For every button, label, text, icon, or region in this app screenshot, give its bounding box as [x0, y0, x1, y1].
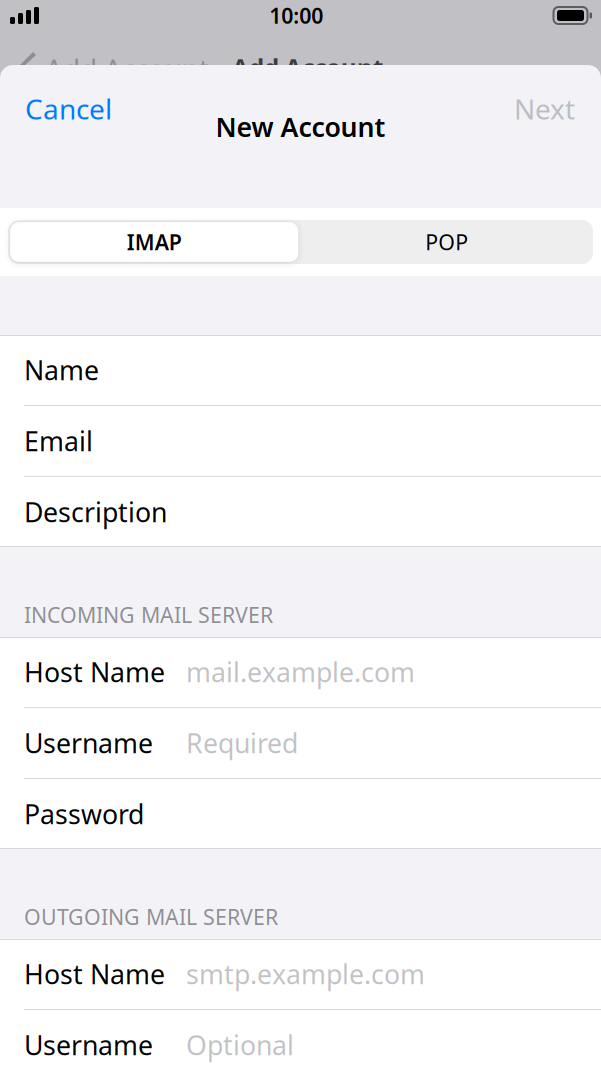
- button[interactable]: Email: [0, 406, 601, 476]
- button[interactable]: Password: [0, 779, 601, 849]
- button[interactable]: Next: [514, 83, 575, 134]
- staticText: Host Name: [24, 956, 165, 992]
- staticText: Username: [24, 725, 153, 761]
- staticText: Username: [24, 1027, 153, 1063]
- staticText: Password: [24, 796, 144, 832]
- staticText: OUTGOING MAIL SERVER: [24, 903, 278, 931]
- staticText: IMAP: [127, 228, 182, 256]
- button[interactable]: POP: [300, 220, 593, 264]
- button[interactable]: IMAP: [8, 220, 300, 264]
- button[interactable]: Description: [0, 477, 601, 547]
- staticText: Optional: [186, 1027, 294, 1063]
- button[interactable]: Name: [0, 335, 601, 405]
- staticText: POP: [425, 228, 468, 256]
- button[interactable]: Cancel: [25, 83, 112, 134]
- staticText: Email: [24, 423, 93, 459]
- staticText: mail.example.com: [186, 654, 415, 690]
- staticText: Cancel: [25, 90, 112, 127]
- button[interactable]: Host Name: [0, 939, 601, 1009]
- button[interactable]: Username: [0, 1010, 601, 1070]
- staticText: INCOMING MAIL SERVER: [24, 601, 273, 629]
- staticText: Add Account: [232, 51, 383, 83]
- staticText: Next: [514, 90, 575, 127]
- staticText: Name: [24, 352, 99, 388]
- button[interactable]: Host Name: [0, 637, 601, 707]
- staticText: Add Account: [45, 50, 209, 87]
- staticText: Description: [24, 494, 167, 530]
- staticText: Required: [186, 725, 298, 761]
- staticText: smtp.example.com: [186, 956, 425, 992]
- staticText: Host Name: [24, 654, 165, 690]
- staticText: New Account: [215, 109, 385, 144]
- staticText: 10:00: [269, 1, 323, 30]
- button[interactable]: Username: [0, 708, 601, 778]
